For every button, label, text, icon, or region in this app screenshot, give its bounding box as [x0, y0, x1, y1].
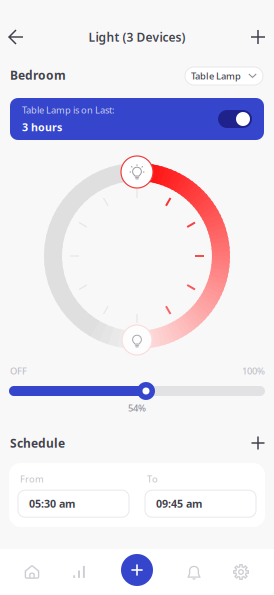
staticText: Light (3 Devices) — [88, 29, 185, 45]
button[interactable]: 09:45 am — [145, 490, 256, 517]
staticText: Table Lamp is on Last: — [22, 104, 115, 116]
button[interactable]: Home — [9, 549, 55, 595]
button[interactable]: Back — [0, 18, 36, 56]
staticText: 54% — [128, 402, 146, 414]
staticText: From — [20, 473, 44, 485]
staticText: OFF — [10, 365, 27, 377]
staticText: 3 hours — [22, 120, 62, 134]
staticText: 05:30 am — [29, 497, 75, 511]
button[interactable]: Notifications — [171, 549, 217, 595]
button[interactable]: Statistics — [56, 549, 102, 595]
button[interactable]: 05:30 am — [18, 490, 129, 517]
staticText: 09:45 am — [156, 497, 202, 511]
staticText: Schedule — [10, 435, 65, 451]
staticText: Table Lamp — [191, 70, 241, 82]
button[interactable]: Add device — [239, 18, 274, 56]
button[interactable]: Table Lamp — [185, 67, 263, 85]
staticText: 100% — [242, 365, 265, 377]
button[interactable]: Add — [114, 547, 160, 593]
staticText: Bedroom — [10, 67, 66, 83]
staticText: To — [147, 473, 158, 485]
button[interactable]: Settings — [218, 549, 264, 595]
button[interactable]: Add schedule — [244, 429, 272, 457]
